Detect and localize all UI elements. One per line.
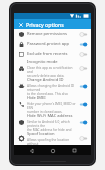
staticText: Remove permissions xyxy=(27,31,67,37)
button[interactable]: Toggle off xyxy=(79,135,88,142)
button[interactable]: Toggle on xyxy=(79,101,88,108)
staticText: Hide IMEI xyxy=(27,95,46,101)
staticText: Allows changing the Android ID returned … xyxy=(27,84,77,95)
staticText: Hide Wi-Fi MAC address xyxy=(27,113,73,119)
button[interactable]: Toggle on xyxy=(79,83,88,90)
staticText: Change Android ID xyxy=(27,77,64,83)
button[interactable]: Change Android ID xyxy=(14,77,91,95)
button[interactable]: Toggle off xyxy=(79,65,88,72)
staticText: Password-protect app xyxy=(27,41,70,47)
button[interactable]: Toggle on xyxy=(79,119,88,126)
button[interactable]: Recents xyxy=(70,146,79,155)
staticText: Spoof location xyxy=(27,131,55,137)
staticText: Hide your phone's IMEI, MEID or ESN numb… xyxy=(27,102,77,113)
staticText: Incognito mode xyxy=(27,59,58,65)
button[interactable]: Back xyxy=(27,146,36,155)
button[interactable]: Hide IMEI xyxy=(14,95,91,113)
button[interactable]: Toggle off xyxy=(79,31,88,38)
staticText: Privacy options xyxy=(26,21,64,28)
button[interactable]: Close xyxy=(17,21,24,28)
staticText: Allows spoofing the location without ena… xyxy=(27,138,77,145)
button[interactable]: Exclude from recents xyxy=(14,49,91,59)
staticText: Similar to Android 6.0, which protects t… xyxy=(27,120,77,131)
button[interactable]: Spoof location xyxy=(14,131,91,145)
button[interactable]: Incognito mode xyxy=(14,59,91,77)
button[interactable]: Remove permissions xyxy=(14,29,91,39)
button[interactable]: Toggle on xyxy=(79,41,88,48)
staticText: Exclude from recents xyxy=(27,51,68,57)
button[interactable]: Home xyxy=(48,146,57,155)
button[interactable]: Password-protect app xyxy=(14,39,91,49)
button[interactable]: Toggle off xyxy=(79,51,88,58)
staticText: Close this app as a notification and sec… xyxy=(27,66,77,77)
button[interactable]: Hide Wi-Fi MAC address xyxy=(14,113,91,131)
